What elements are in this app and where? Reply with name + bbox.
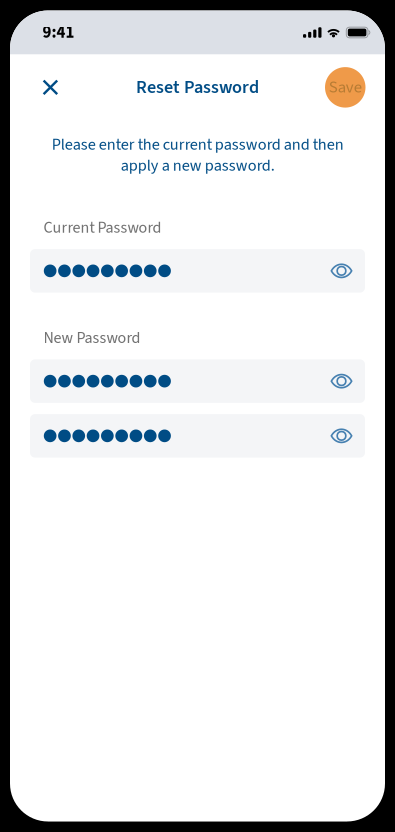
staticText: Current Password [44, 216, 162, 239]
button[interactable]: Show password [326, 249, 356, 293]
staticText: 9:41 [42, 20, 74, 44]
staticText: Please enter the current password and th… [51, 133, 343, 177]
button[interactable]: Save [325, 67, 365, 108]
button[interactable]: Show password [326, 414, 356, 458]
staticText: Save [329, 75, 362, 99]
staticText: New Password [44, 327, 141, 349]
button[interactable]: Show password [326, 359, 356, 403]
button[interactable]: Close [28, 65, 72, 109]
staticText: Reset Password [136, 74, 259, 100]
